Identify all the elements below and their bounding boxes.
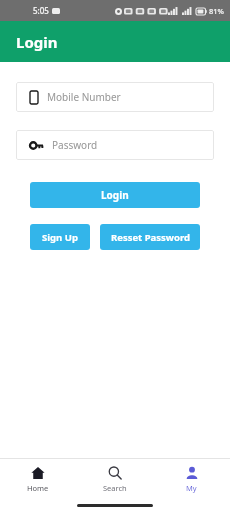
button[interactable]: Sign Up (30, 224, 90, 250)
staticText: 81% (209, 6, 224, 16)
button[interactable]: Home (0, 459, 76, 499)
staticText: Resset Password (111, 231, 190, 244)
button[interactable]: Login (30, 182, 200, 208)
staticText: Home (27, 483, 49, 493)
button[interactable]: Password (16, 130, 214, 160)
staticText: Search (103, 483, 127, 493)
staticText: 5:05 (33, 5, 49, 16)
button[interactable]: Search (76, 459, 153, 499)
button[interactable]: Mobile Number (16, 82, 214, 112)
staticText: My (186, 483, 197, 493)
staticText: Password (52, 138, 98, 152)
staticText: Login (16, 32, 58, 52)
staticText: Mobile Number (47, 90, 121, 104)
staticText: Sign Up (42, 231, 78, 244)
staticText: Login (101, 188, 129, 202)
button[interactable]: Resset Password (100, 224, 200, 250)
button[interactable]: My profile (153, 459, 230, 499)
